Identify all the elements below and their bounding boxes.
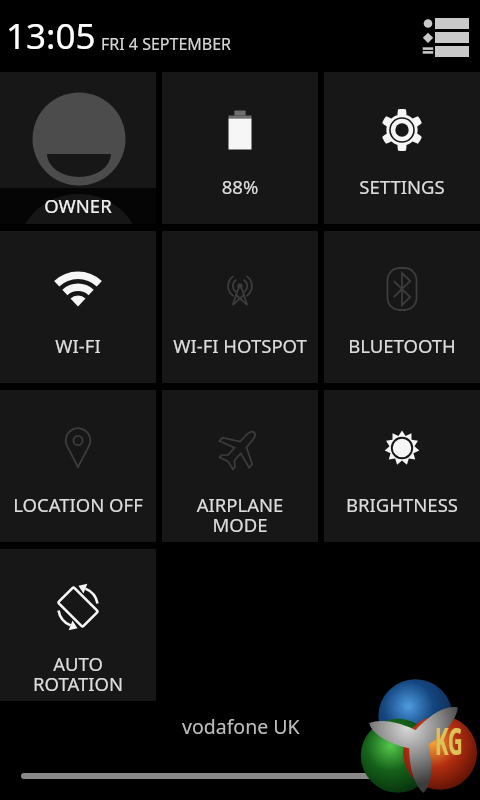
button[interactable]: OWNER [0, 72, 156, 224]
staticText: 13:05 [6, 12, 96, 60]
button[interactable]: WI-FI HOTSPOT [162, 231, 318, 383]
staticText: LOCATION OFF [0, 492, 156, 517]
button[interactable]: AIRPLANE MODE [162, 390, 318, 542]
staticText: WI-FI [0, 333, 156, 358]
staticText: KG [435, 714, 463, 765]
staticText: BLUETOOTH [324, 333, 480, 358]
staticText: SETTINGS [324, 174, 480, 199]
button[interactable]: Brightness slider [21, 773, 460, 779]
button[interactable]: AUTO ROTATION [0, 549, 156, 701]
staticText: WI-FI HOTSPOT [162, 333, 318, 358]
staticText: 88% [162, 174, 318, 199]
staticText: BRIGHTNESS [324, 492, 480, 517]
button[interactable]: BRIGHTNESS [324, 390, 480, 542]
staticText: AIRPLANE MODE [162, 492, 318, 537]
staticText: vodafone UK [182, 713, 300, 740]
button[interactable]: LOCATION OFF [0, 390, 156, 542]
staticText: AUTO ROTATION [0, 651, 156, 696]
staticText: OWNER [0, 193, 156, 218]
staticText: FRI 4 SEPTEMBER [101, 33, 232, 55]
button[interactable]: 88% [162, 72, 318, 224]
button[interactable]: BLUETOOTH [324, 231, 480, 383]
button[interactable]: WI-FI [0, 231, 156, 383]
button[interactable]: SETTINGS [324, 72, 480, 224]
button[interactable]: Notifications list [418, 14, 474, 58]
